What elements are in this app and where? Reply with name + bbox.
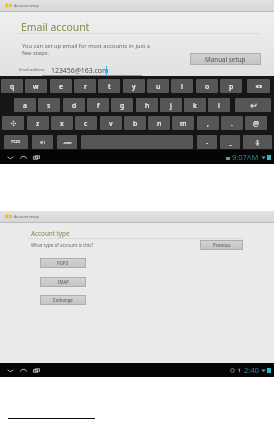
button[interactable]: r <box>74 79 96 93</box>
staticText: What type of account is this? <box>31 242 94 248</box>
button[interactable]: .com <box>57 135 77 149</box>
button[interactable]: u <box>147 79 169 93</box>
button[interactable]: k <box>184 98 206 112</box>
button[interactable]: d <box>63 98 85 112</box>
button[interactable]: Previous <box>200 240 243 250</box>
button[interactable]: x <box>51 116 73 130</box>
staticText: w <box>33 82 39 91</box>
staticText: - <box>206 138 209 147</box>
button[interactable]: q <box>1 79 23 93</box>
staticText: h <box>145 101 150 110</box>
staticText: ?123 <box>11 139 21 145</box>
button[interactable]: Keyboard settings <box>32 135 53 149</box>
staticText: 123456@163.com <box>51 66 109 75</box>
staticText: a <box>23 101 27 110</box>
button[interactable]: Voice input <box>243 135 272 149</box>
staticText: q <box>10 82 15 91</box>
staticText: , <box>207 119 209 128</box>
staticText: Account setup <box>14 214 39 219</box>
button[interactable]: g <box>111 98 133 112</box>
staticText: . <box>231 119 233 128</box>
staticText: t <box>108 82 111 91</box>
staticText: m <box>180 119 187 128</box>
staticText: Account setup <box>14 3 39 8</box>
button[interactable]: Enter <box>235 98 271 112</box>
staticText: IMAP <box>58 279 69 285</box>
button[interactable]: - <box>197 135 217 149</box>
staticText: g <box>120 101 125 110</box>
button[interactable]: v <box>100 116 122 130</box>
button[interactable]: f <box>87 98 109 112</box>
button[interactable]: App icon <box>5 3 12 8</box>
staticText: v <box>109 119 113 128</box>
staticText: l <box>218 101 220 110</box>
button[interactable]: ?123 <box>4 135 28 149</box>
staticText: Account type <box>31 229 70 238</box>
button[interactable]: t <box>98 79 120 93</box>
button[interactable]: p <box>220 79 242 93</box>
button[interactable]: App icon <box>5 214 12 219</box>
button[interactable]: b <box>124 116 146 130</box>
button[interactable]: w <box>25 79 47 93</box>
staticText: i <box>181 82 183 91</box>
staticText: u <box>156 82 161 91</box>
button[interactable]: z <box>27 116 49 130</box>
button[interactable]: n <box>148 116 170 130</box>
staticText: k <box>193 101 197 110</box>
button[interactable]: c <box>75 116 97 130</box>
staticText: Manual setup <box>205 55 246 64</box>
staticText: c <box>84 119 88 128</box>
button[interactable]: Shift <box>2 116 24 130</box>
button[interactable]: Backspace <box>247 79 270 93</box>
staticText: Previous <box>213 242 231 248</box>
button[interactable]: s <box>38 98 60 112</box>
button[interactable]: m <box>172 116 194 130</box>
staticText: y <box>132 82 136 91</box>
staticText: n <box>157 119 162 128</box>
staticText: e <box>59 82 63 91</box>
staticText: Email address <box>19 67 45 72</box>
staticText: s <box>47 101 51 110</box>
staticText: Email account <box>21 20 90 34</box>
button[interactable]: a <box>14 98 36 112</box>
staticText: b <box>133 119 138 128</box>
button[interactable]: j <box>160 98 182 112</box>
button[interactable]: Recent apps <box>30 151 43 164</box>
button[interactable]: POP3 <box>40 258 86 268</box>
button[interactable]: i <box>171 79 193 93</box>
button[interactable]: y <box>123 79 145 93</box>
button[interactable]: Home <box>17 364 30 377</box>
button[interactable]: _ <box>220 135 240 149</box>
button[interactable]: Back <box>4 364 17 377</box>
button[interactable]: Home <box>17 151 30 164</box>
staticText: r <box>84 82 87 91</box>
button[interactable]: h <box>136 98 158 112</box>
staticText: .com <box>63 140 72 145</box>
staticText: d <box>72 101 77 110</box>
button[interactable]: Recent apps <box>30 364 43 377</box>
staticText: 9:07AM <box>232 152 259 162</box>
staticText: @ <box>253 119 260 128</box>
button[interactable]: , <box>197 116 219 130</box>
staticText: 2:40 <box>244 365 259 375</box>
button[interactable]: e <box>50 79 72 93</box>
staticText: p <box>229 82 234 91</box>
staticText: You can set up email for most accounts i… <box>22 42 150 57</box>
button[interactable]: . <box>221 116 243 130</box>
staticText: o <box>205 82 210 91</box>
staticText: x <box>60 119 64 128</box>
button[interactable]: Exchange <box>40 295 86 305</box>
staticText: POP3 <box>57 260 69 266</box>
button[interactable]: Manual setup <box>190 53 261 65</box>
button[interactable]: @ <box>245 116 267 130</box>
button[interactable]: IMAP <box>40 277 86 287</box>
staticText: f <box>97 101 100 110</box>
button[interactable]: o <box>196 79 218 93</box>
staticText: z <box>36 119 40 128</box>
staticText: Exchange <box>53 297 73 303</box>
button[interactable]: l <box>208 98 230 112</box>
staticText: j <box>170 101 172 110</box>
staticText: _ <box>229 138 232 147</box>
button[interactable]: Back <box>4 151 17 164</box>
